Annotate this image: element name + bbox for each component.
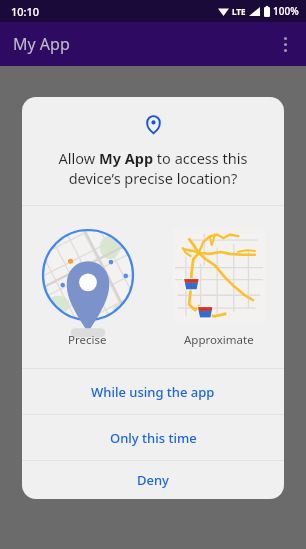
- button[interactable]: Approximate: [153, 221, 284, 354]
- button[interactable]: Deny: [22, 461, 284, 499]
- staticText: 10:10: [11, 4, 40, 19]
- staticText: Precise: [68, 332, 107, 348]
- staticText: My App: [13, 33, 70, 55]
- button[interactable]: Precise: [22, 221, 153, 354]
- staticText: Deny: [137, 471, 169, 489]
- button[interactable]: Only this time: [22, 415, 284, 460]
- button[interactable]: More options: [270, 29, 300, 59]
- staticText: Allow My App to access this device’s pre…: [38, 148, 268, 188]
- staticText: While using the app: [91, 383, 215, 401]
- staticText: 100%: [273, 4, 299, 18]
- staticText: Approximate: [184, 332, 254, 348]
- staticText: Only this time: [110, 429, 197, 447]
- button[interactable]: While using the app: [22, 369, 284, 414]
- staticText: LTE: [232, 6, 246, 17]
